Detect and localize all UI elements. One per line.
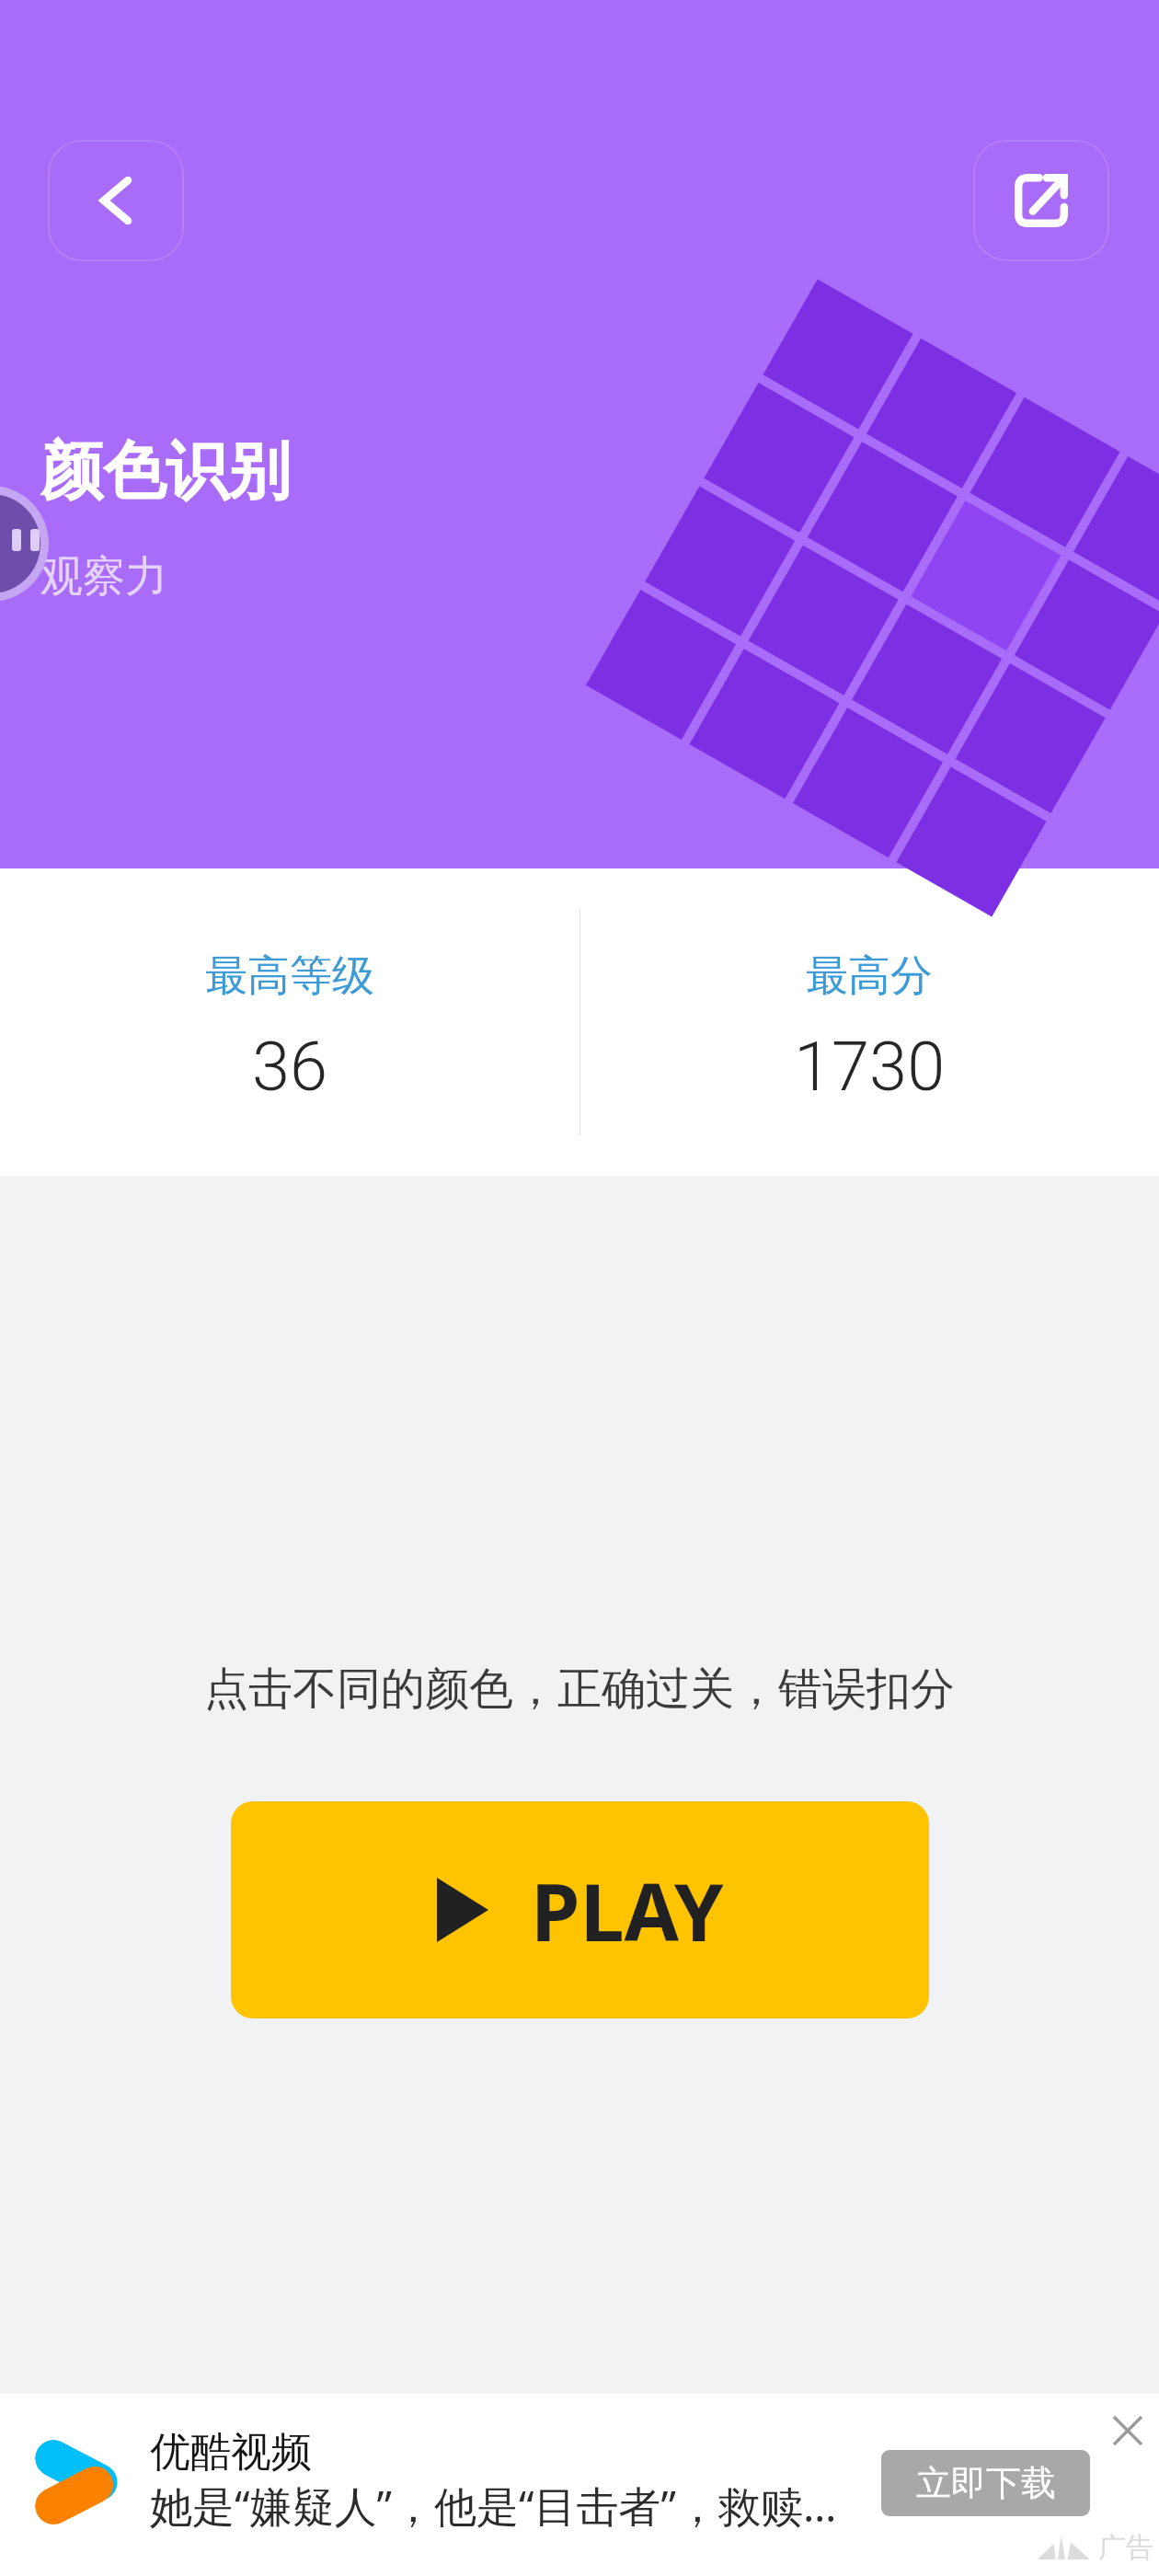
staticText: 36 <box>252 1027 328 1107</box>
button[interactable]: Close ad <box>1100 2403 1155 2458</box>
button[interactable]: 立即下载 <box>881 2450 1090 2516</box>
button[interactable]: Back <box>48 140 184 261</box>
staticText: 立即下载 <box>916 2461 1056 2505</box>
button[interactable]: Share <box>973 140 1109 261</box>
staticText: PLAY <box>531 1857 724 1964</box>
staticText: 观察力 <box>40 550 167 604</box>
button[interactable]: Pause <box>0 486 49 602</box>
staticText: 最高分 <box>806 949 933 1003</box>
staticText: 优酷视频 <box>150 2427 312 2478</box>
staticText: 最高等级 <box>205 949 374 1003</box>
staticText: 1730 <box>794 1027 946 1107</box>
staticText: 点击不同的颜色，正确过关，错误扣分 <box>204 1662 955 1717</box>
staticText: 广告 <box>1098 2530 1153 2565</box>
button[interactable]: PLAY <box>231 1801 929 2018</box>
staticText: 颜色识别 <box>40 432 291 512</box>
staticText: 她是“嫌疑人”，他是“目击者”，救赎… <box>150 2477 837 2535</box>
button[interactable]: 优酷视频 <box>0 2394 1159 2576</box>
